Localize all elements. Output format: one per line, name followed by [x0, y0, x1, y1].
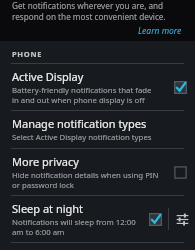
button[interactable]: More privacy	[0, 149, 195, 195]
button[interactable]: Sleep at night settings	[169, 213, 195, 226]
staticText: More privacy	[12, 154, 79, 169]
staticText: Battery-friendly notifications that fade…	[12, 85, 152, 105]
button[interactable]: Manage notification types	[0, 111, 195, 148]
staticText: respond on the most convenient device.	[12, 11, 166, 22]
button[interactable]: Toggle Active Display	[165, 81, 195, 94]
staticText: Notifications will sleep from 12:00 am t…	[12, 217, 136, 237]
button[interactable]: Toggle Sleep at night	[142, 213, 168, 226]
staticText: Hide notification details when using PIN…	[12, 170, 159, 190]
button[interactable]: Learn more	[136, 24, 184, 38]
button[interactable]: Toggle More privacy	[165, 166, 195, 179]
staticText: Sleep at night	[12, 201, 84, 216]
staticText: Manage notification types	[12, 116, 147, 131]
staticText: Get notifications wherever you are, and …	[12, 0, 184, 11]
staticText: Active Display	[12, 69, 84, 84]
staticText: PHONE	[12, 49, 43, 59]
staticText: Select Active Display notification types	[12, 132, 152, 143]
button[interactable]: Sleep at night	[0, 196, 195, 242]
button[interactable]: Active Display	[0, 64, 195, 110]
